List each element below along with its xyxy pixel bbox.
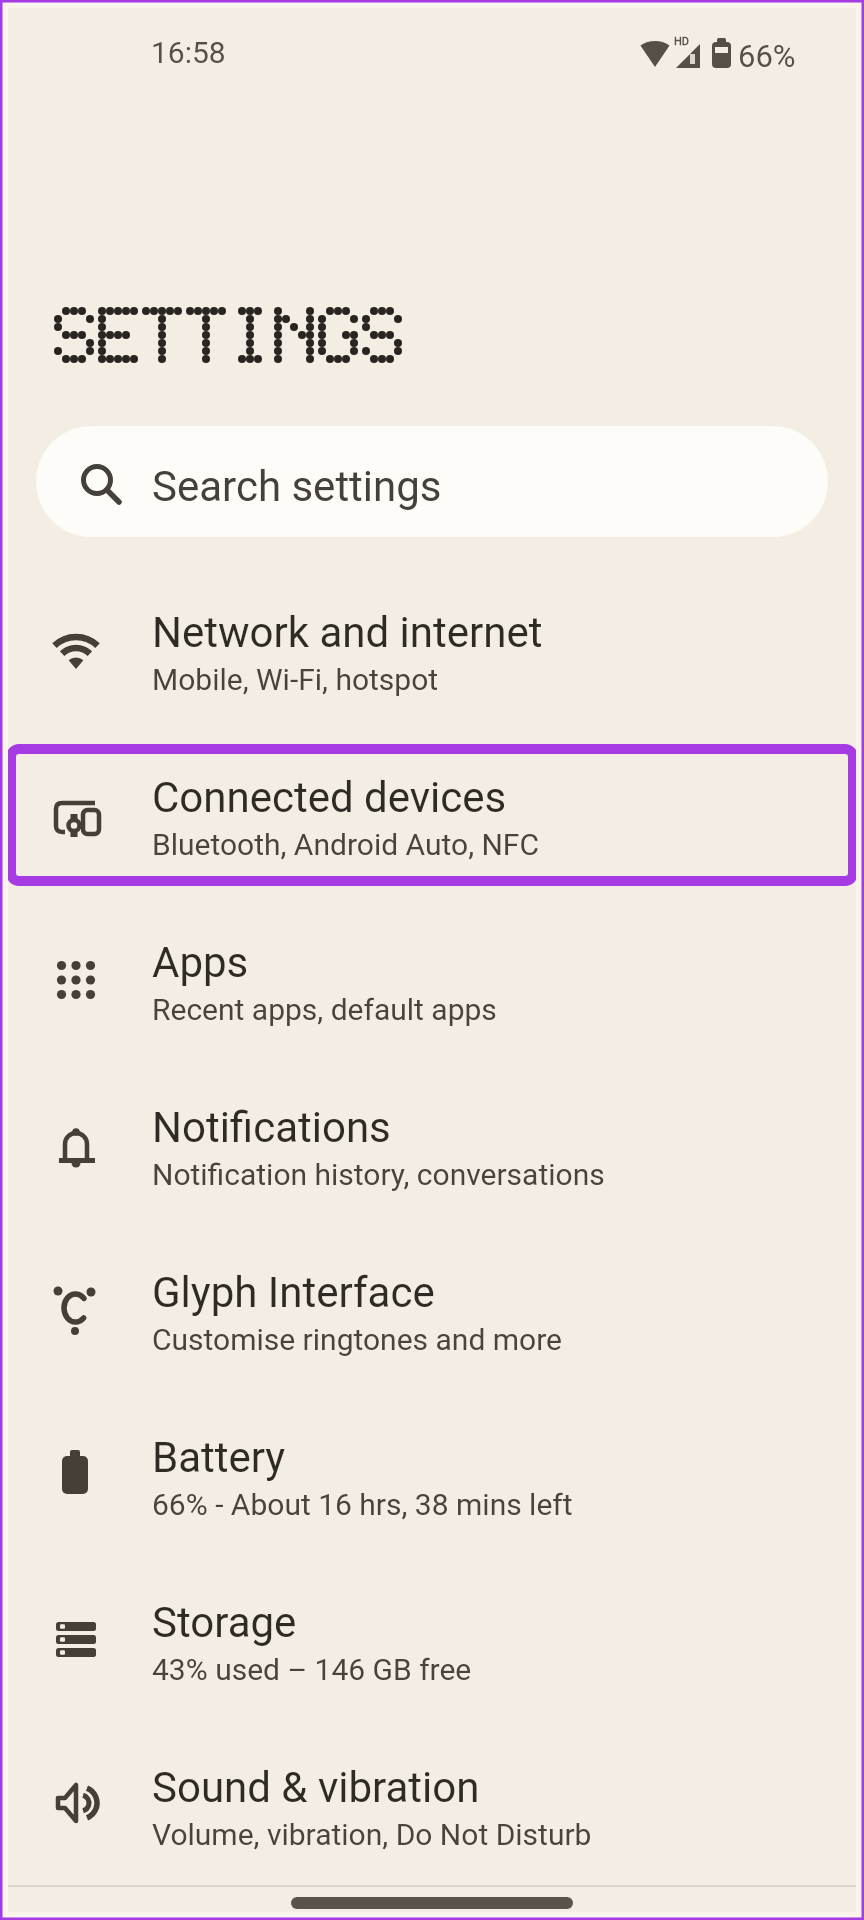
staticText: Volume, vibration, Do Not Disturb: [152, 1817, 592, 1852]
staticText: 66% - About 16 hrs, 38 mins left: [152, 1487, 573, 1522]
staticText: Network and internet: [152, 608, 543, 657]
staticText: Glyph Interface: [152, 1268, 435, 1317]
staticText: Apps: [152, 938, 249, 987]
button[interactable]: Glyph Interface: [0, 1228, 864, 1392]
button[interactable]: Sound & vibration: [0, 1723, 864, 1887]
button[interactable]: Battery: [0, 1393, 864, 1557]
staticText: Recent apps, default apps: [152, 992, 497, 1027]
staticText: Storage: [152, 1598, 297, 1647]
staticText: Search settings: [152, 462, 442, 511]
staticText: HD: [674, 35, 690, 48]
staticText: 66%: [738, 38, 796, 74]
staticText: Notification history, conversations: [152, 1157, 605, 1192]
staticText: Customise ringtones and more: [152, 1322, 562, 1357]
staticText: 16:58: [151, 35, 226, 70]
button[interactable]: Network and internet: [0, 568, 864, 732]
staticText: Battery: [152, 1433, 286, 1482]
button[interactable]: Search settings: [36, 426, 828, 537]
staticText: 43% used – 146 GB free: [152, 1652, 472, 1687]
staticText: Bluetooth, Android Auto, NFC: [152, 827, 539, 862]
button[interactable]: Storage: [0, 1558, 864, 1722]
button[interactable]: Apps: [0, 898, 864, 1062]
staticText: Mobile, Wi-Fi, hotspot: [152, 662, 439, 697]
staticText: Connected devices: [152, 773, 507, 822]
button[interactable]: Notifications: [0, 1063, 864, 1227]
button[interactable]: Connected devices: [0, 733, 864, 897]
staticText: Notifications: [152, 1103, 391, 1152]
staticText: Sound & vibration: [152, 1763, 480, 1812]
